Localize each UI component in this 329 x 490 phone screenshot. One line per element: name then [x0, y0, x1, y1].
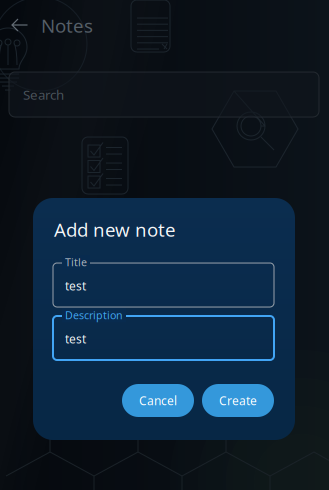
staticText: Create	[219, 392, 257, 408]
button[interactable]: Search	[9, 72, 319, 117]
staticText: Title	[65, 255, 87, 269]
staticText: Add new note	[54, 217, 176, 242]
button[interactable]: test	[53, 316, 274, 360]
staticText: Search	[23, 86, 64, 103]
staticText: Cancel	[139, 392, 177, 408]
staticText: Description	[65, 308, 123, 322]
staticText: Notes	[41, 13, 93, 38]
button[interactable]: test	[53, 263, 274, 307]
staticText: test	[65, 278, 86, 294]
staticText: test	[65, 331, 86, 347]
button[interactable]: Create	[202, 384, 274, 417]
button[interactable]: Back	[5, 10, 35, 40]
button[interactable]: Cancel	[122, 384, 194, 417]
